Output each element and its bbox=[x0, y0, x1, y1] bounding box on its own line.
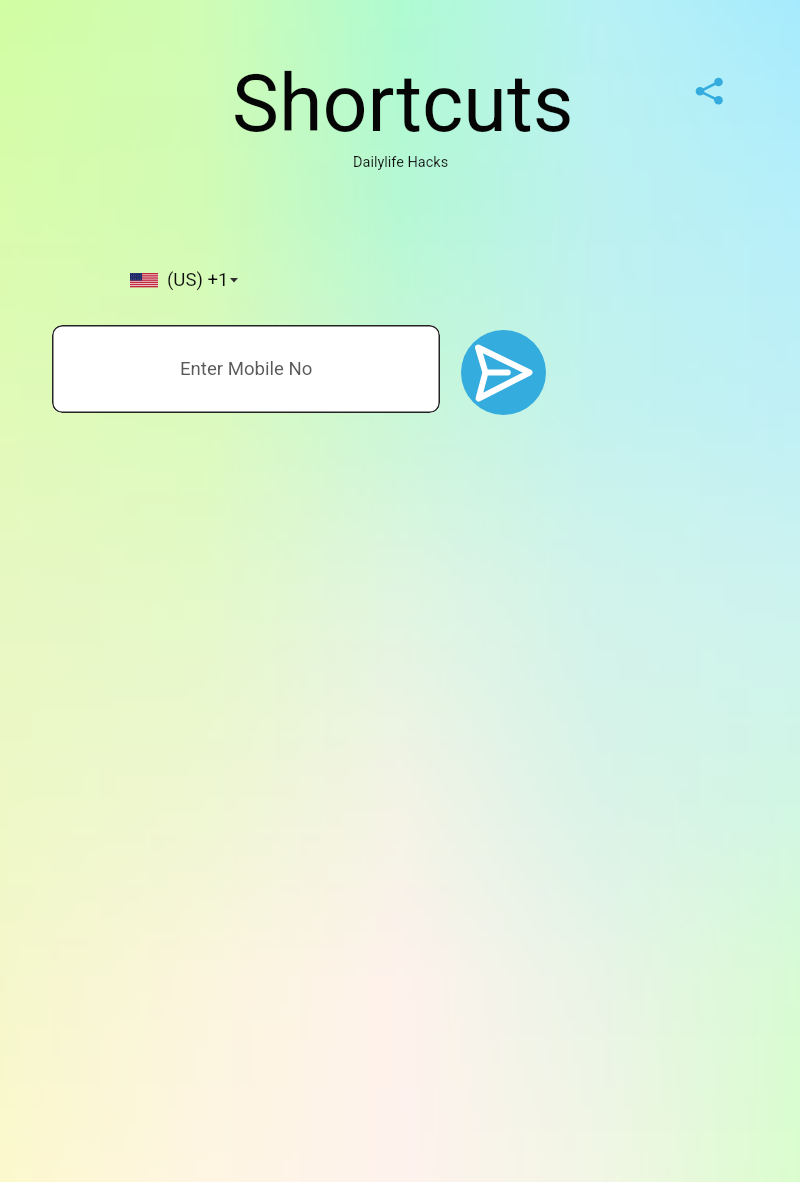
button[interactable]: Share bbox=[690, 72, 730, 112]
staticText: Dailylife Hacks bbox=[353, 154, 449, 171]
staticText: Enter Mobile No bbox=[180, 358, 313, 380]
staticText: (US) +1 bbox=[167, 269, 229, 291]
button[interactable]: Send bbox=[461, 330, 546, 415]
button[interactable]: (US) +1 bbox=[130, 269, 238, 291]
button[interactable]: Enter Mobile No bbox=[52, 325, 440, 413]
staticText: Shortcuts bbox=[232, 58, 574, 151]
